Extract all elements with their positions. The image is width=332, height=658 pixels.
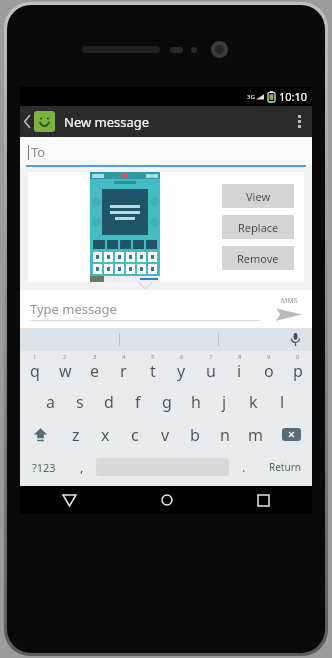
button[interactable]: 8 (225, 351, 254, 385)
staticText: h (191, 391, 201, 413)
staticText: f (135, 391, 141, 413)
staticText: p (293, 360, 303, 382)
staticText: . (242, 458, 246, 476)
staticText: 6 (180, 353, 184, 361)
staticText: 4 (122, 353, 126, 361)
button[interactable]: v (150, 418, 180, 451)
button[interactable]: More options (286, 106, 312, 137)
staticText: Remove (237, 251, 279, 266)
staticText: 7 (209, 353, 213, 361)
button[interactable]: View (222, 184, 294, 208)
button[interactable]: Back (20, 486, 118, 514)
button[interactable]: m (240, 418, 270, 451)
button[interactable]: 6 (167, 351, 196, 385)
staticText: 3G (247, 93, 255, 101)
button[interactable]: Type message (30, 290, 260, 328)
staticText: e (90, 360, 100, 382)
button[interactable]: 1 (20, 351, 50, 385)
button[interactable]: n (210, 418, 240, 451)
staticText: , (80, 458, 84, 476)
staticText: ?123 (32, 460, 56, 475)
button[interactable]: k (239, 385, 268, 418)
button[interactable]: Backspace (270, 418, 312, 451)
button[interactable]: x (90, 418, 120, 451)
staticText: t (150, 360, 156, 382)
staticText: j (222, 391, 227, 413)
button[interactable]: Shift (20, 418, 61, 451)
staticText: MMS (281, 296, 298, 306)
button[interactable]: c (120, 418, 150, 451)
button[interactable]: f (123, 385, 152, 418)
staticText: q (30, 360, 40, 382)
staticText: i (237, 360, 242, 382)
staticText: v (161, 424, 170, 446)
staticText: 1 (33, 353, 37, 361)
button[interactable]: 7 (196, 351, 225, 385)
button[interactable]: Return (258, 451, 312, 483)
button[interactable]: Home (118, 486, 215, 514)
staticText: 8 (238, 353, 242, 361)
staticText: l (280, 391, 285, 413)
staticText: 3 (93, 353, 97, 361)
button[interactable]: Replace (222, 215, 294, 239)
button[interactable]: j (210, 385, 239, 418)
button[interactable]: 4 (109, 351, 138, 385)
staticText: m (248, 424, 263, 446)
staticText: 9 (267, 353, 271, 361)
button[interactable]: s (65, 385, 94, 418)
staticText: k (249, 391, 258, 413)
button[interactable]: g (152, 385, 181, 418)
button[interactable]: . (229, 451, 258, 483)
staticText: 0 (296, 353, 300, 361)
staticText: 2 (63, 353, 67, 361)
staticText: a (46, 391, 55, 413)
staticText: o (264, 360, 274, 382)
button[interactable]: 3 (80, 351, 109, 385)
button[interactable]: 2 (50, 351, 80, 385)
staticText: View (246, 189, 271, 204)
button[interactable]: 9 (254, 351, 283, 385)
staticText: Type message (30, 300, 260, 318)
staticText: g (162, 391, 172, 413)
button[interactable]: Send MMS (266, 290, 312, 328)
staticText: b (190, 424, 200, 446)
staticText: z (72, 424, 80, 446)
staticText: r (120, 360, 127, 382)
button[interactable]: ?123 (20, 451, 67, 483)
staticText: d (104, 391, 114, 413)
staticText: To (31, 143, 46, 161)
button[interactable]: 5 (138, 351, 167, 385)
staticText: n (220, 424, 230, 446)
button[interactable]: Navigate up (20, 107, 57, 136)
button[interactable]: a (36, 385, 65, 418)
button[interactable]: Remove (222, 246, 294, 270)
button[interactable]: , (67, 451, 96, 483)
staticText: u (206, 360, 216, 382)
staticText: 10:10 (279, 89, 308, 104)
staticText: s (76, 391, 84, 413)
staticText: x (101, 424, 110, 446)
button[interactable]: z (61, 418, 90, 451)
staticText: c (131, 424, 139, 446)
button[interactable]: b (180, 418, 210, 451)
staticText: New message (64, 113, 150, 131)
button[interactable]: Recent apps (215, 486, 312, 514)
button[interactable]: Voice input (278, 328, 312, 351)
button[interactable]: l (268, 385, 297, 418)
button[interactable]: d (94, 385, 123, 418)
staticText: w (59, 360, 72, 382)
staticText: Return (269, 460, 301, 474)
button[interactable]: 0 (283, 351, 312, 385)
staticText: y (177, 360, 186, 382)
button[interactable]: h (181, 385, 210, 418)
staticText: Replace (238, 220, 279, 235)
staticText: 5 (151, 353, 155, 361)
